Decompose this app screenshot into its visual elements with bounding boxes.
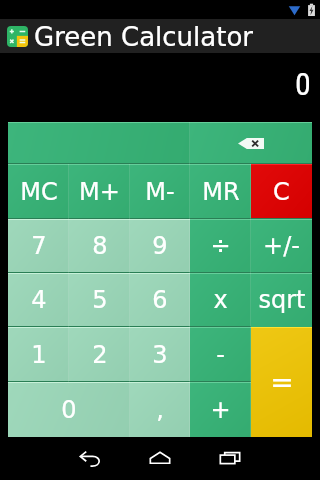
staticText: x xyxy=(213,286,228,314)
staticText: 7 xyxy=(31,232,47,260)
button[interactable]: ÷ xyxy=(190,219,251,273)
button[interactable]: 1 xyxy=(8,327,69,382)
button[interactable]: 3 xyxy=(130,327,190,382)
staticText: MR xyxy=(202,178,240,206)
staticText: +/- xyxy=(263,232,300,260)
staticText: Green Calculator xyxy=(34,22,254,52)
staticText: 9 xyxy=(152,232,168,260)
staticText: 4 xyxy=(31,286,47,314)
button[interactable]: M+ xyxy=(69,164,130,219)
staticText: 0 xyxy=(295,65,311,103)
button[interactable]: +/- xyxy=(251,219,312,273)
staticText: 2 xyxy=(92,341,108,369)
button[interactable]: C xyxy=(251,164,312,219)
staticText: MC xyxy=(20,178,58,206)
staticText: + xyxy=(210,396,231,424)
button[interactable]: Backspace xyxy=(190,122,312,164)
button[interactable]: M- xyxy=(130,164,190,219)
button[interactable]: - xyxy=(190,327,251,382)
staticText: M+ xyxy=(79,178,120,206)
button[interactable]: 0 xyxy=(8,382,130,437)
button[interactable]: + xyxy=(190,382,251,437)
button[interactable]: Home xyxy=(125,437,195,480)
button[interactable]: 7 xyxy=(8,219,69,273)
staticText: 5 xyxy=(92,286,108,314)
button[interactable]: Recents xyxy=(195,437,265,480)
button[interactable]: x xyxy=(190,273,251,327)
button[interactable]: 2 xyxy=(69,327,130,382)
staticText: ÷ xyxy=(210,232,231,260)
staticText: - xyxy=(216,341,225,369)
staticText: 8 xyxy=(92,232,108,260)
button[interactable]: 6 xyxy=(130,273,190,327)
staticText: , xyxy=(156,396,164,424)
staticText: M- xyxy=(145,178,175,206)
button[interactable]: MC xyxy=(8,164,69,219)
button[interactable]: Back xyxy=(55,437,125,480)
staticText: 1 xyxy=(31,341,47,369)
button[interactable]: sqrt xyxy=(251,273,312,327)
button[interactable]: 5 xyxy=(69,273,130,327)
button[interactable]: MR xyxy=(190,164,251,219)
button[interactable]: = xyxy=(251,327,312,437)
button[interactable]: 4 xyxy=(8,273,69,327)
button[interactable]: 9 xyxy=(130,219,190,273)
staticText: 0 xyxy=(61,396,77,424)
staticText: 6 xyxy=(152,286,168,314)
button[interactable]: , xyxy=(130,382,190,437)
staticText: = xyxy=(270,366,294,399)
staticText: C xyxy=(273,178,290,206)
button[interactable] xyxy=(8,122,190,164)
button[interactable]: 8 xyxy=(69,219,130,273)
staticText: 3 xyxy=(152,341,168,369)
staticText: sqrt xyxy=(258,286,306,314)
